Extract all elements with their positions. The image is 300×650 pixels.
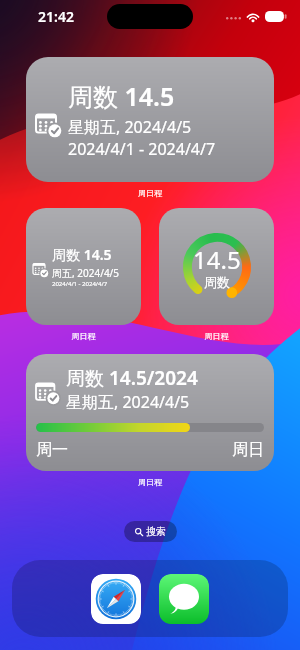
- button[interactable]: 周数 14.5: [26, 57, 274, 182]
- staticText: 周数 14.5: [52, 245, 112, 264]
- button[interactable]: Messages: [159, 574, 209, 624]
- staticText: 周日程: [159, 331, 274, 341]
- staticText: 周日程: [26, 331, 141, 341]
- staticText: 星期五, 2024/4/5: [68, 116, 192, 138]
- button[interactable]: Safari: [91, 574, 141, 624]
- staticText: 周数 14.5/2024: [66, 365, 198, 391]
- staticText: 周五, 2024/4/5: [52, 266, 120, 280]
- staticText: 周数 14.5: [68, 79, 175, 113]
- staticText: 周数: [204, 274, 230, 290]
- button[interactable]: 周数 14.5/2024: [26, 354, 274, 471]
- staticText: 搜索: [146, 525, 166, 538]
- staticText: 周日: [232, 440, 264, 460]
- button[interactable]: 搜索: [124, 521, 177, 542]
- button[interactable]: 14.5: [159, 208, 274, 325]
- staticText: 14.5: [193, 243, 241, 276]
- staticText: 周日程: [0, 477, 300, 487]
- staticText: 周一: [36, 440, 68, 460]
- staticText: 21:42: [38, 7, 74, 26]
- staticText: 2024/4/1 - 2024/4/7: [68, 138, 216, 160]
- staticText: 2024/4/1 - 2024/4/7: [52, 280, 108, 288]
- staticText: 周日程: [0, 188, 300, 198]
- staticText: 星期五, 2024/4/5: [66, 391, 190, 413]
- button[interactable]: 周数 14.5: [26, 208, 141, 325]
